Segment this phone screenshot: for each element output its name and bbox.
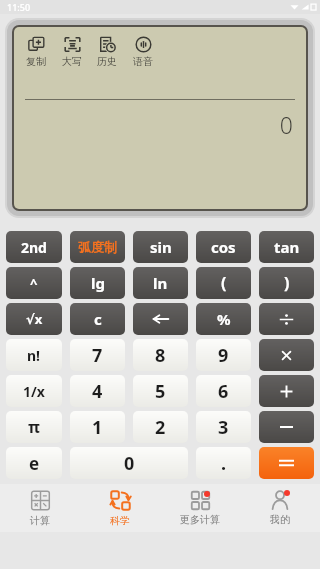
staticText: 2nd: [21, 238, 47, 257]
button[interactable]: 复制: [26, 36, 46, 68]
staticText: 计算: [30, 514, 50, 527]
button[interactable]: 历史: [97, 36, 117, 68]
staticText: 8: [155, 343, 166, 368]
button[interactable]: 计算: [0, 490, 80, 527]
staticText: 6: [218, 379, 229, 404]
button[interactable]: ): [259, 267, 314, 299]
button[interactable]: (: [196, 267, 251, 299]
button[interactable]: 加: [259, 375, 314, 407]
staticText: 0: [124, 451, 135, 476]
staticText: ): [284, 272, 290, 294]
staticText: cos: [211, 237, 236, 257]
button[interactable]: 5: [133, 375, 188, 407]
button[interactable]: 科学: [80, 490, 160, 527]
staticText: (: [221, 272, 227, 294]
button[interactable]: 9: [196, 339, 251, 371]
staticText: 11:50: [7, 1, 31, 13]
other: 科学: [110, 490, 131, 511]
other: 语音: [135, 36, 152, 53]
staticText: tan: [274, 237, 300, 257]
button[interactable]: 1/x: [6, 375, 62, 407]
staticText: 7: [92, 343, 103, 368]
button[interactable]: 我的: [240, 490, 320, 526]
staticText: 科学: [110, 514, 130, 527]
button[interactable]: 除: [259, 303, 314, 335]
staticText: 语音: [133, 55, 153, 68]
staticText: 9: [218, 343, 229, 368]
button[interactable]: 减: [259, 411, 314, 443]
staticText: 1: [92, 415, 103, 440]
button[interactable]: 2: [133, 411, 188, 443]
staticText: 0: [14, 109, 293, 140]
button[interactable]: ln: [133, 267, 188, 299]
button[interactable]: 3: [196, 411, 251, 443]
button[interactable]: c: [70, 303, 125, 335]
button[interactable]: 4: [70, 375, 125, 407]
staticText: .: [221, 451, 227, 476]
button[interactable]: 等于: [259, 447, 314, 479]
staticText: lg: [91, 273, 105, 293]
button[interactable]: sin: [133, 231, 188, 263]
staticText: e: [29, 452, 40, 475]
button[interactable]: 8: [133, 339, 188, 371]
button[interactable]: 弧度制: [70, 231, 125, 263]
other: 更多计算: [191, 491, 210, 510]
staticText: 3: [218, 415, 229, 440]
staticText: 我的: [270, 513, 290, 526]
button[interactable]: tan: [259, 231, 314, 263]
staticText: π: [28, 416, 40, 438]
staticText: n!: [27, 346, 41, 365]
button[interactable]: e: [6, 447, 62, 479]
staticText: 4: [92, 379, 103, 404]
button[interactable]: lg: [70, 267, 125, 299]
button[interactable]: 2nd: [6, 231, 62, 263]
other: 复制: [28, 36, 45, 53]
staticText: 1/x: [23, 382, 45, 401]
staticText: 弧度制: [78, 239, 117, 255]
button[interactable]: 6: [196, 375, 251, 407]
button[interactable]: 更多计算: [160, 491, 240, 526]
button[interactable]: ^: [6, 267, 62, 299]
staticText: 更多计算: [180, 513, 220, 526]
staticText: 复制: [26, 55, 46, 68]
button[interactable]: n!: [6, 339, 62, 371]
staticText: sin: [150, 237, 172, 257]
button[interactable]: 语音: [133, 36, 153, 68]
button[interactable]: cos: [196, 231, 251, 263]
other: 历史: [99, 36, 116, 53]
staticText: √x: [26, 310, 43, 328]
staticText: c: [94, 309, 102, 329]
staticText: 2: [155, 415, 166, 440]
button[interactable]: 退格: [133, 303, 188, 335]
button[interactable]: π: [6, 411, 62, 443]
button[interactable]: 0: [70, 447, 188, 479]
other: 我的: [270, 490, 290, 510]
staticText: ln: [153, 273, 168, 293]
staticText: %: [217, 309, 231, 329]
staticText: 大写: [62, 55, 82, 68]
button[interactable]: 乘: [259, 339, 314, 371]
other: 大写: [64, 36, 81, 53]
button[interactable]: 大写: [62, 36, 82, 68]
button[interactable]: √x: [6, 303, 62, 335]
button[interactable]: %: [196, 303, 251, 335]
button[interactable]: .: [196, 447, 251, 479]
staticText: ^: [30, 274, 38, 292]
staticText: 5: [155, 379, 166, 404]
button[interactable]: 1: [70, 411, 125, 443]
other: 计算: [30, 490, 51, 511]
button[interactable]: 7: [70, 339, 125, 371]
staticText: 历史: [97, 55, 117, 68]
